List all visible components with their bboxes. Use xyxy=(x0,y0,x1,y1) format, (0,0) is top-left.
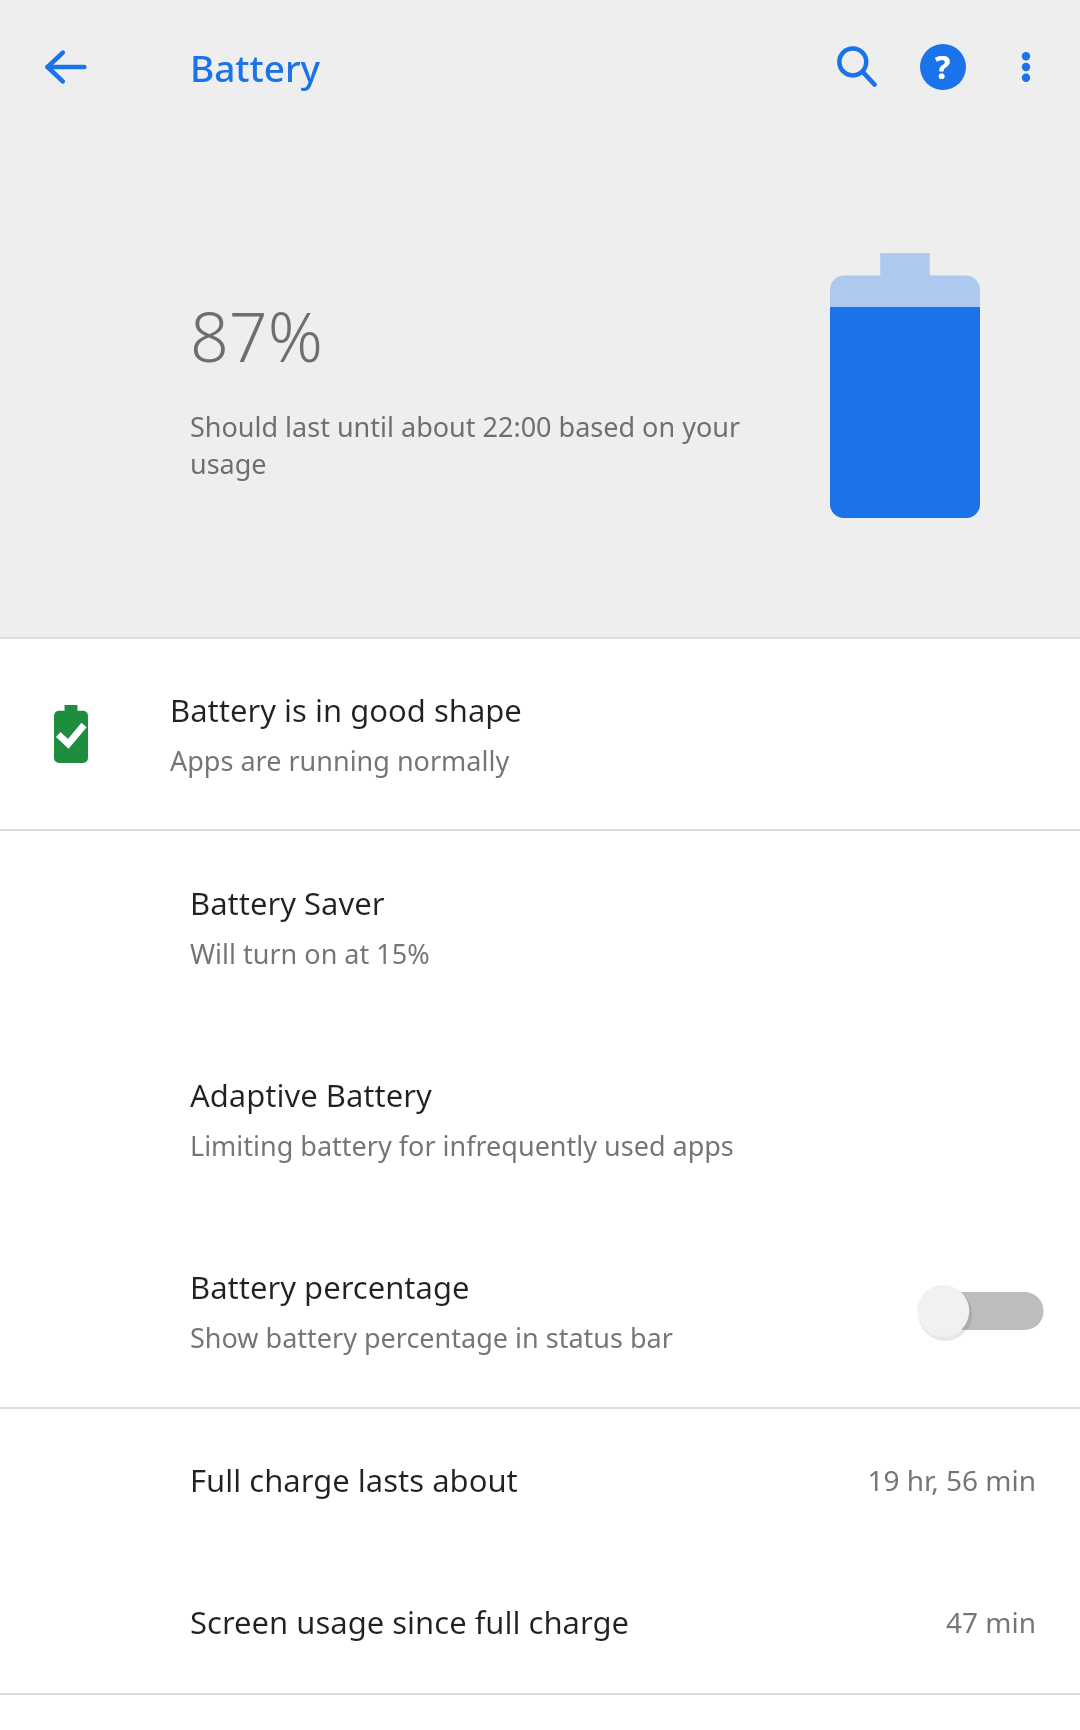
button[interactable]: Battery Saver xyxy=(0,831,1080,1023)
staticText: Limiting battery for infrequently used a… xyxy=(190,1127,734,1164)
staticText: ? xyxy=(935,45,951,89)
button[interactable]: More options xyxy=(986,27,1066,107)
staticText: Show battery percentage in status bar xyxy=(190,1319,673,1356)
button[interactable]: Battery is in good shape xyxy=(0,639,1080,829)
button[interactable]: Battery percentage xyxy=(0,1215,1080,1407)
button[interactable]: Adaptive Battery xyxy=(0,1023,1080,1215)
button[interactable]: Back xyxy=(30,31,102,103)
staticText: Screen usage since full charge xyxy=(190,1601,945,1643)
staticText: Battery xyxy=(190,42,321,92)
staticText: Adaptive Battery xyxy=(190,1074,432,1116)
staticText: Battery is in good shape xyxy=(170,689,522,731)
staticText: Full charge lasts about xyxy=(190,1459,867,1501)
button[interactable]: Full charge lasts about xyxy=(0,1409,1080,1551)
button[interactable]: Screen usage since full charge xyxy=(0,1551,1080,1693)
staticText: 19 hr, 56 min xyxy=(867,1461,1036,1499)
staticText: Should last until about 22:00 based on y… xyxy=(190,408,810,482)
staticText: Apps are running normally xyxy=(170,742,510,779)
staticText: Will turn on at 15% xyxy=(190,935,430,972)
button[interactable]: Search xyxy=(814,24,900,110)
staticText: Battery percentage xyxy=(190,1266,470,1308)
staticText: 87% xyxy=(190,289,323,382)
button[interactable]: Battery percentage toggle xyxy=(930,1276,1040,1346)
staticText: Battery Saver xyxy=(190,882,385,924)
button[interactable]: Help xyxy=(900,24,986,110)
staticText: 47 min xyxy=(945,1603,1036,1641)
